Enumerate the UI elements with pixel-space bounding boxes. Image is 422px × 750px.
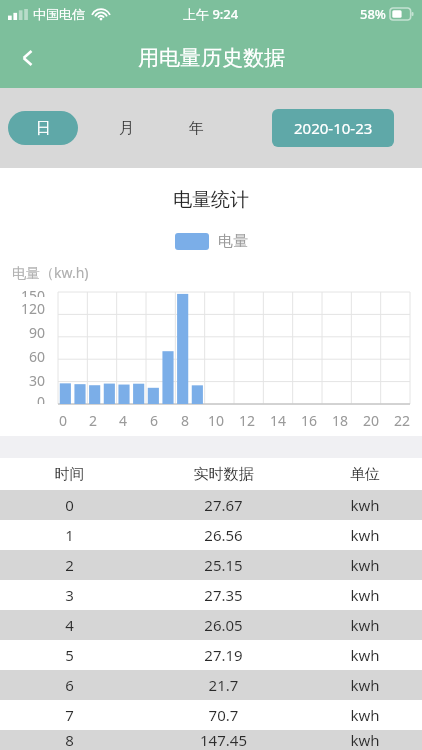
staticText: kwh xyxy=(308,585,422,605)
button[interactable]: 8 xyxy=(0,730,422,750)
staticText: 22 xyxy=(394,411,411,430)
staticText: 7 xyxy=(0,705,139,725)
button[interactable]: 2 xyxy=(0,550,422,580)
staticText: 2 xyxy=(0,555,139,575)
button[interactable]: 4 xyxy=(0,610,422,640)
staticText: 8 xyxy=(181,411,190,430)
staticText: 26.56 xyxy=(139,525,308,545)
staticText: 30 xyxy=(29,371,46,390)
staticText: kwh xyxy=(308,705,422,725)
staticText: 时间 xyxy=(0,465,139,484)
staticText: kwh xyxy=(308,645,422,665)
button[interactable]: 2020-10-23 xyxy=(272,109,394,147)
staticText: 58% xyxy=(360,5,386,23)
staticText: 20 xyxy=(363,411,380,430)
button[interactable]: 6 xyxy=(0,670,422,700)
button[interactable]: 7 xyxy=(0,700,422,730)
staticText: 14 xyxy=(270,411,287,430)
staticText: 0 xyxy=(0,495,139,515)
staticText: 10 xyxy=(208,411,225,430)
staticText: 120 xyxy=(21,299,46,318)
staticText: 6 xyxy=(150,411,159,430)
staticText: kwh xyxy=(308,615,422,635)
staticText: kwh xyxy=(308,555,422,575)
button[interactable]: 日 xyxy=(8,111,78,145)
staticText: 27.19 xyxy=(139,645,308,665)
staticText: 4 xyxy=(119,411,128,430)
staticText: 2020-10-23 xyxy=(294,118,373,138)
staticText: 27.67 xyxy=(139,495,308,515)
staticText: 60 xyxy=(29,347,46,366)
button[interactable]: 5 xyxy=(0,640,422,670)
staticText: 18 xyxy=(332,411,349,430)
staticText: 电量 xyxy=(218,232,248,251)
staticText: 中国电信 xyxy=(33,6,85,22)
button[interactable]: 月 xyxy=(102,111,150,145)
staticText: 月 xyxy=(119,119,134,138)
staticText: kwh xyxy=(308,495,422,515)
staticText: 上午 9:24 xyxy=(183,5,239,23)
button[interactable]: 0 xyxy=(0,490,422,520)
button[interactable]: 1 xyxy=(0,520,422,550)
staticText: 电量（kw.h) xyxy=(12,263,89,282)
staticText: 单位 xyxy=(308,465,422,484)
staticText: 5 xyxy=(0,645,139,665)
staticText: 150 xyxy=(21,286,46,297)
button[interactable]: 年 xyxy=(172,111,220,145)
staticText: 70.7 xyxy=(139,705,308,725)
staticText: 3 xyxy=(0,585,139,605)
staticText: 4 xyxy=(0,615,139,635)
staticText: kwh xyxy=(308,525,422,545)
staticText: 8 xyxy=(0,730,139,750)
staticText: 25.15 xyxy=(139,555,308,575)
staticText: 0 xyxy=(59,411,68,430)
staticText: 27.35 xyxy=(139,585,308,605)
staticText: 2 xyxy=(89,411,98,430)
staticText: 1 xyxy=(0,525,139,545)
staticText: 电量统计 xyxy=(0,188,422,212)
staticText: 147.45 xyxy=(139,730,308,750)
staticText: 90 xyxy=(29,323,46,342)
staticText: 6 xyxy=(0,675,139,695)
button[interactable]: 3 xyxy=(0,580,422,610)
staticText: 实时数据 xyxy=(139,465,308,484)
staticText: 12 xyxy=(239,411,256,430)
staticText: 16 xyxy=(301,411,318,430)
staticText: 21.7 xyxy=(139,675,308,695)
staticText: 年 xyxy=(189,119,204,138)
staticText: 用电量历史数据 xyxy=(138,45,285,71)
staticText: 0 xyxy=(37,392,46,404)
button[interactable]: Back xyxy=(6,36,50,80)
staticText: 日 xyxy=(36,119,51,138)
staticText: 26.05 xyxy=(139,615,308,635)
staticText: kwh xyxy=(308,730,422,750)
staticText: kwh xyxy=(308,675,422,695)
